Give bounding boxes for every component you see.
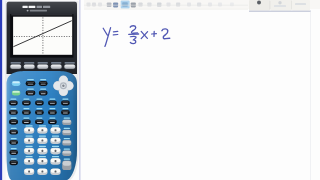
button[interactable]: Graphing calculator image bbox=[3, 0, 81, 180]
button[interactable]: Toolbar bbox=[84, 0, 320, 12]
